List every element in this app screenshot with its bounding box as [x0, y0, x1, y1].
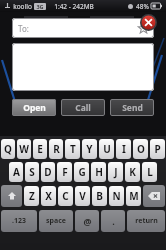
button[interactable]: H [91, 162, 106, 182]
button[interactable]: @ [75, 210, 99, 232]
staticText: Q [4, 142, 12, 156]
staticText: Y [86, 142, 93, 156]
staticText: Send [122, 102, 143, 114]
staticText: koollo [13, 2, 32, 11]
staticText: @ [83, 215, 92, 227]
button[interactable]: To: [12, 18, 154, 38]
staticText: 3G [36, 3, 44, 10]
staticText: Call [75, 102, 91, 114]
staticText: 48% [136, 2, 149, 11]
staticText: R [53, 142, 60, 156]
button[interactable]: Call [61, 99, 105, 116]
staticText: . [112, 215, 115, 227]
staticText: U [103, 142, 111, 156]
button[interactable]: C [58, 186, 73, 206]
staticText: Open [23, 102, 46, 114]
button[interactable]: Q [1, 139, 15, 159]
staticText: T [70, 142, 76, 156]
button[interactable]: Y [82, 139, 97, 159]
staticText: X [45, 189, 52, 203]
staticText: W [19, 142, 29, 156]
staticText: M [129, 189, 139, 203]
button[interactable]: W [17, 139, 31, 159]
button[interactable]: R [49, 139, 63, 159]
staticText: G [78, 165, 86, 179]
staticText: J [114, 165, 118, 179]
button[interactable]: N [109, 186, 124, 206]
button[interactable]: Shift [1, 185, 22, 207]
staticText: N [112, 189, 121, 203]
button[interactable]: I [116, 139, 131, 159]
button[interactable]: D [41, 162, 55, 182]
staticText: I [122, 142, 126, 156]
staticText: Z [29, 189, 35, 203]
button[interactable]: E [33, 139, 47, 159]
button[interactable]: Send [110, 99, 154, 116]
button[interactable] [12, 43, 154, 91]
staticText: space [46, 216, 66, 226]
staticText: F [62, 165, 68, 179]
button[interactable]: . [101, 210, 125, 232]
staticText: O [137, 142, 145, 156]
button[interactable]: A [9, 162, 23, 182]
staticText: H [95, 165, 103, 179]
staticText: D [44, 165, 52, 179]
button[interactable]: Z [24, 186, 39, 206]
staticText: B [96, 189, 103, 203]
staticText: return [135, 216, 158, 226]
staticText: A [13, 165, 20, 179]
button[interactable]: K [125, 162, 140, 182]
staticText: 1:42 - 242MB [54, 2, 94, 11]
button[interactable]: B [92, 186, 107, 206]
button[interactable]: O [133, 139, 148, 159]
button[interactable]: Backspace [143, 185, 165, 207]
button[interactable]: X [41, 186, 56, 206]
button[interactable]: F [57, 162, 72, 182]
button[interactable]: J [108, 162, 123, 182]
button[interactable]: space [39, 210, 73, 232]
button[interactable]: P [150, 139, 165, 159]
staticText: S [29, 165, 35, 179]
button[interactable]: return [127, 210, 165, 232]
staticText: P [154, 142, 161, 156]
staticText: To: [18, 23, 29, 34]
button[interactable]: L [142, 162, 157, 182]
button[interactable]: V [75, 186, 90, 206]
button[interactable]: U [99, 139, 114, 159]
button[interactable]: T [65, 139, 80, 159]
button[interactable]: Open [12, 99, 56, 116]
button[interactable]: G [74, 162, 89, 182]
staticText: C [62, 189, 69, 203]
button[interactable]: S [25, 162, 39, 182]
button[interactable]: Close [140, 14, 157, 31]
staticText: E [37, 142, 43, 156]
staticText: V [79, 189, 86, 203]
button[interactable]: .123 [1, 210, 37, 232]
staticText: K [129, 165, 136, 179]
button[interactable]: Favorites [137, 22, 149, 34]
staticText: .123 [12, 216, 26, 226]
staticText: L [147, 165, 153, 179]
button[interactable]: M [126, 186, 141, 206]
